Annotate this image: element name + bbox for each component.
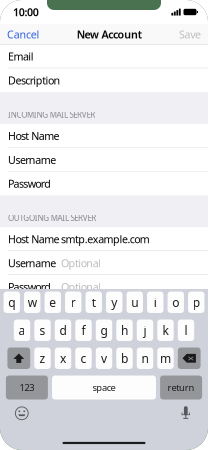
staticText: Description: [8, 73, 60, 87]
button[interactable]: j: [137, 319, 153, 341]
staticText: c: [80, 350, 86, 366]
staticText: Username: [8, 153, 56, 167]
button[interactable]: y: [106, 291, 122, 313]
staticText: l: [184, 322, 187, 338]
staticText: m: [160, 350, 171, 366]
staticText: d: [59, 322, 66, 338]
staticText: smtp.example.com: [61, 232, 150, 246]
staticText: q: [8, 294, 15, 310]
staticText: Username: [8, 256, 56, 270]
staticText: Password: [8, 280, 51, 294]
staticText: o: [172, 294, 179, 310]
button[interactable]: d: [55, 319, 71, 341]
button[interactable]: Host Name: [0, 124, 208, 148]
staticText: y: [111, 294, 117, 310]
button[interactable]: e: [44, 291, 61, 313]
button[interactable]: r: [65, 291, 81, 313]
staticText: 123: [20, 381, 34, 394]
button[interactable]: k: [157, 319, 174, 341]
staticText: k: [162, 322, 168, 338]
button[interactable]: g: [96, 319, 112, 341]
staticText: p: [193, 294, 200, 310]
button[interactable]: Description: [0, 68, 208, 92]
button[interactable]: Email: [0, 44, 208, 68]
button[interactable]: Save: [179, 27, 201, 41]
button[interactable]: Host Name: [0, 227, 208, 251]
button[interactable]: return: [160, 375, 202, 399]
button[interactable]: w: [24, 291, 40, 313]
staticText: b: [121, 350, 128, 366]
button[interactable]: Password: [0, 172, 208, 196]
button[interactable]: b: [116, 347, 133, 369]
staticText: t: [92, 294, 96, 310]
button[interactable]: c: [75, 347, 92, 369]
staticText: a: [18, 322, 25, 338]
staticText: n: [141, 350, 148, 366]
button[interactable]: Shift: [7, 347, 30, 369]
button[interactable]: i: [147, 291, 163, 313]
button[interactable]: h: [116, 319, 133, 341]
button[interactable]: n: [137, 347, 153, 369]
staticText: return: [168, 381, 195, 394]
staticText: Save: [179, 27, 201, 41]
staticText: Host Name: [8, 129, 60, 143]
button[interactable]: x: [55, 347, 71, 369]
button[interactable]: s: [34, 319, 51, 341]
staticText: g: [100, 322, 107, 338]
button[interactable]: a: [14, 319, 30, 341]
staticText: j: [143, 322, 146, 338]
staticText: x: [60, 350, 66, 366]
staticText: Cancel: [7, 27, 39, 41]
staticText: Email: [8, 49, 34, 64]
button[interactable]: Username: [0, 148, 208, 172]
button[interactable]: p: [188, 291, 204, 313]
button[interactable]: Delete: [178, 347, 201, 369]
staticText: i: [154, 294, 157, 310]
staticText: v: [101, 350, 107, 366]
staticText: OUTGOING MAIL SERVER: [8, 213, 96, 223]
button[interactable]: Emoji: [15, 406, 29, 420]
button[interactable]: v: [96, 347, 112, 369]
button[interactable]: m: [157, 347, 174, 369]
staticText: Optional: [61, 256, 101, 270]
button[interactable]: q: [3, 291, 20, 313]
staticText: New Account: [77, 27, 142, 41]
staticText: Optional: [61, 280, 101, 294]
button[interactable]: Dictation: [181, 407, 191, 420]
staticText: e: [49, 294, 56, 310]
button[interactable]: space: [52, 375, 156, 399]
button[interactable]: Cancel: [7, 27, 39, 41]
staticText: s: [39, 322, 45, 338]
staticText: Host Name: [8, 232, 60, 246]
staticText: u: [131, 294, 138, 310]
staticText: z: [39, 350, 45, 366]
staticText: h: [121, 322, 128, 338]
button[interactable]: Password: [0, 275, 208, 299]
button[interactable]: f: [75, 319, 92, 341]
staticText: 10:00: [13, 5, 39, 19]
staticText: space: [92, 381, 116, 394]
staticText: INCOMING MAIL SERVER: [8, 109, 95, 120]
button[interactable]: o: [167, 291, 184, 313]
button[interactable]: Username: [0, 251, 208, 275]
staticText: w: [28, 294, 37, 310]
staticText: Password: [8, 177, 51, 191]
staticText: r: [71, 294, 76, 310]
button[interactable]: l: [178, 319, 194, 341]
button[interactable]: t: [85, 291, 102, 313]
button[interactable]: z: [34, 347, 51, 369]
button[interactable]: u: [126, 291, 143, 313]
staticText: f: [81, 322, 85, 338]
button[interactable]: 123: [6, 375, 48, 399]
